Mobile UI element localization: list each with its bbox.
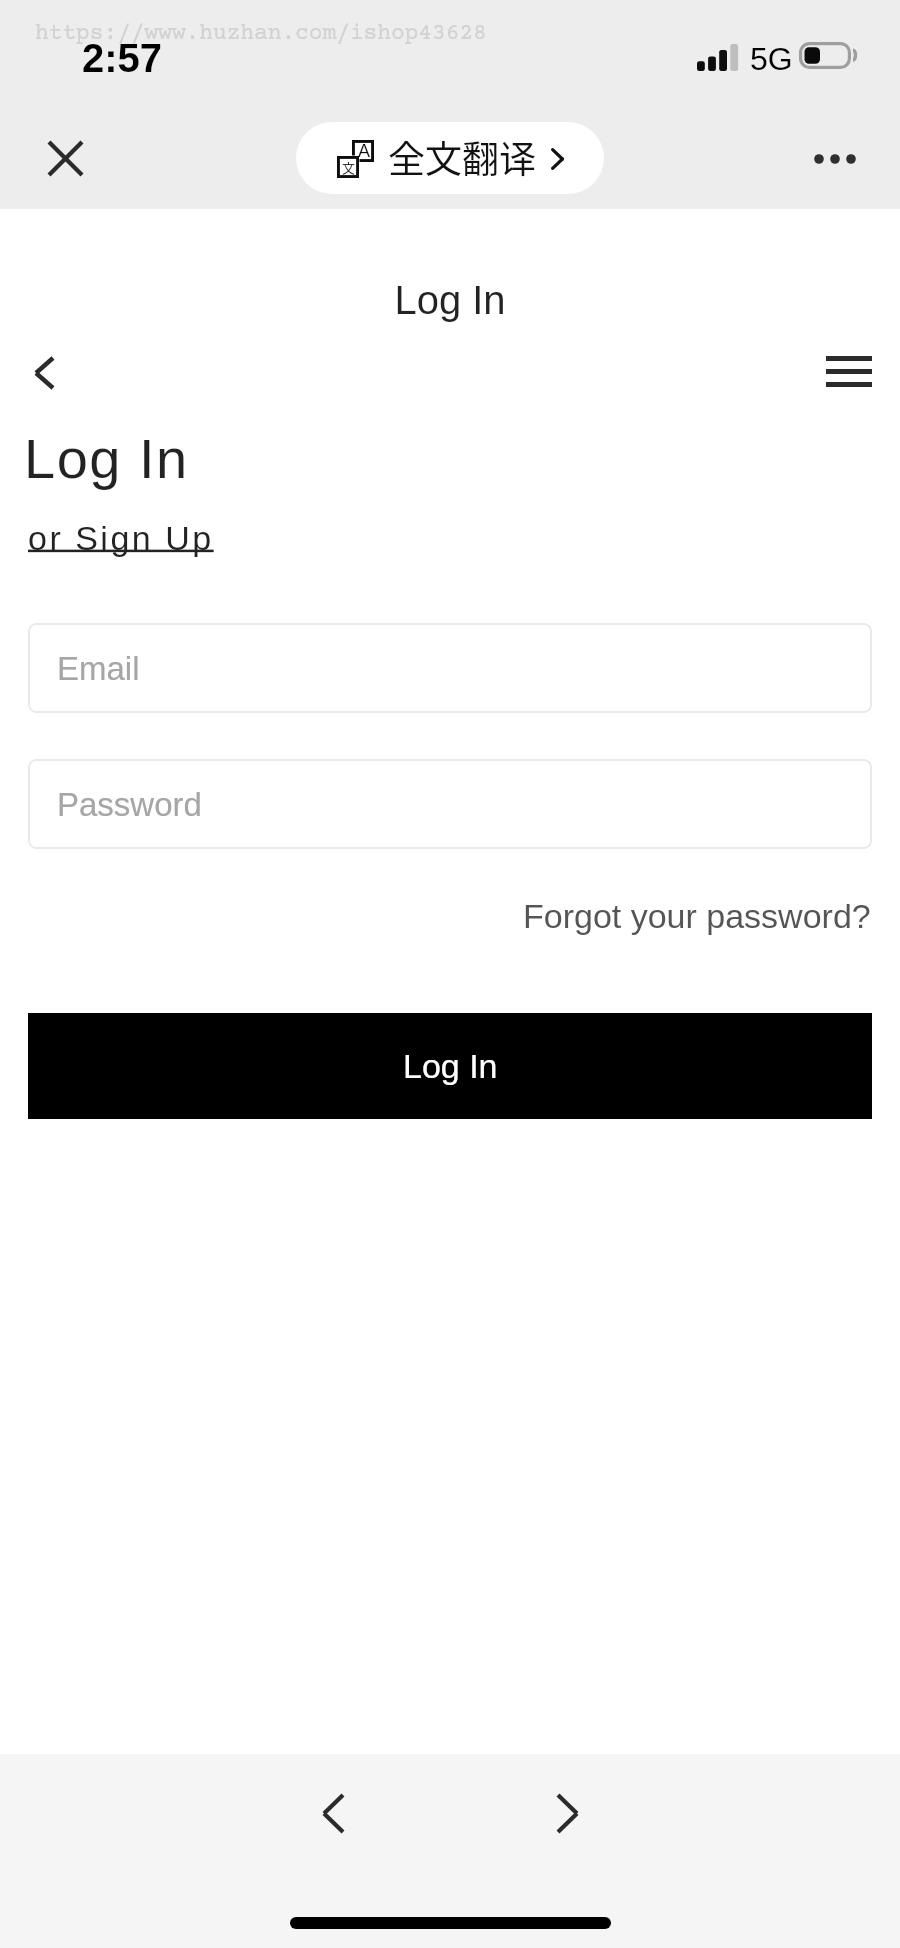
button[interactable]: Forward bbox=[536, 1782, 598, 1844]
staticText: 2:57 bbox=[82, 36, 163, 81]
staticText: Log In bbox=[0, 278, 900, 323]
staticText: 5G bbox=[750, 41, 793, 77]
staticText: 文 bbox=[342, 158, 356, 177]
button[interactable]: Password bbox=[28, 759, 872, 849]
staticText: Log In bbox=[24, 427, 189, 490]
button[interactable]: Close bbox=[33, 126, 97, 190]
button[interactable]: A bbox=[296, 122, 604, 194]
button[interactable]: Back bbox=[302, 1782, 364, 1844]
staticText: https://www.huzhan.com/ishop43628 bbox=[35, 21, 487, 47]
staticText: A bbox=[358, 141, 371, 161]
button[interactable]: Email bbox=[28, 623, 872, 713]
button[interactable]: or Sign Up bbox=[28, 519, 214, 557]
button[interactable]: Log In bbox=[28, 1013, 872, 1119]
staticText: Password bbox=[57, 786, 202, 823]
staticText: 全文翻译 bbox=[388, 130, 536, 184]
button[interactable]: Back bbox=[12, 341, 76, 405]
button[interactable]: Forgot your password? bbox=[523, 897, 871, 935]
button[interactable]: Menu bbox=[817, 343, 881, 399]
button[interactable]: More options bbox=[800, 128, 870, 190]
staticText: Log In bbox=[403, 1047, 498, 1085]
staticText: Email bbox=[57, 650, 140, 687]
